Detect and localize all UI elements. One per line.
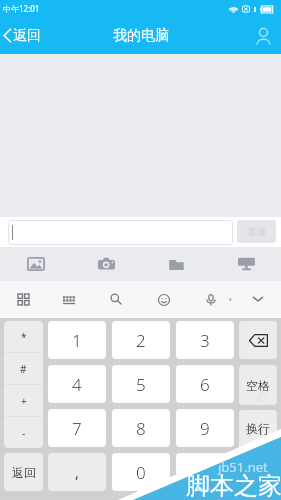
staticText: 0: [136, 461, 146, 484]
staticText: 7: [72, 417, 82, 440]
staticText: 3: [200, 329, 210, 352]
button[interactable]: Apps: [12, 288, 34, 310]
staticText: +: [21, 394, 27, 408]
button[interactable]: 3: [176, 321, 234, 359]
staticText: 我的电脑: [113, 27, 169, 45]
button[interactable]: 换行: [239, 410, 277, 492]
button[interactable]: +: [4, 385, 43, 416]
staticText: 8: [136, 417, 146, 440]
button[interactable]: Keyboard: [58, 289, 80, 311]
button[interactable]: Search: [105, 288, 127, 310]
staticText: -: [22, 426, 26, 440]
button[interactable]: 0: [112, 453, 170, 491]
button[interactable]: 4: [48, 365, 106, 403]
button[interactable]: Image: [0, 247, 71, 281]
staticText: 2: [136, 329, 146, 352]
button[interactable]: Camera: [71, 247, 141, 281]
button[interactable]: 1: [48, 321, 106, 359]
button[interactable]: 7: [48, 409, 106, 447]
button[interactable]: Voice input: [200, 289, 222, 311]
staticText: 返回: [13, 27, 41, 45]
button[interactable]: 返回: [0, 17, 47, 54]
staticText: *: [21, 330, 27, 344]
button[interactable]: Folder: [141, 247, 211, 281]
button[interactable]: 9: [176, 409, 234, 447]
staticText: jb51.net: [218, 458, 268, 476]
button[interactable]: 空格: [239, 365, 277, 405]
staticText: 空格: [246, 378, 270, 393]
button[interactable]: 发送: [237, 220, 276, 243]
button[interactable]: Remote desktop: [211, 247, 281, 281]
staticText: 换行: [246, 421, 270, 436]
button[interactable]: [8, 220, 233, 245]
button[interactable]: -: [4, 417, 43, 448]
button[interactable]: 2: [112, 321, 170, 359]
staticText: ,: [75, 462, 80, 482]
staticText: 返回: [12, 465, 36, 480]
button[interactable]: *: [4, 321, 43, 352]
button[interactable]: #: [4, 353, 43, 384]
staticText: 6: [200, 373, 210, 396]
button[interactable]: 5: [112, 365, 170, 403]
staticText: 5: [136, 373, 146, 396]
button[interactable]: ,: [48, 453, 106, 491]
button[interactable]: Emoji: [153, 289, 175, 311]
button[interactable]: 6: [176, 365, 234, 403]
button[interactable]: Hide keyboard: [247, 288, 269, 310]
staticText: 1: [72, 329, 82, 352]
button[interactable]: Contact: [245, 17, 281, 54]
button[interactable]: 8: [112, 409, 170, 447]
staticText: #: [20, 362, 27, 376]
button[interactable]: Backspace: [239, 321, 277, 359]
staticText: 脚本之家: [186, 471, 281, 500]
staticText: 9: [200, 417, 210, 440]
button[interactable]: [176, 453, 234, 491]
button[interactable]: 返回: [4, 453, 43, 491]
staticText: 中午12:01: [3, 3, 40, 14]
staticText: 4: [72, 373, 82, 396]
staticText: 发送: [247, 225, 267, 238]
